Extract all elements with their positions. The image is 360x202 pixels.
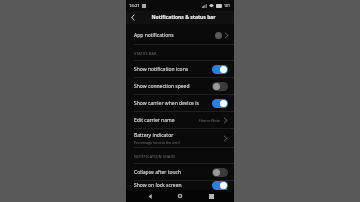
staticText: Show notification icons xyxy=(134,66,189,73)
staticText: App notifications xyxy=(134,32,215,39)
button[interactable]: Back xyxy=(143,190,157,202)
staticText: Edit carrier name xyxy=(134,117,175,124)
button[interactable]: Battery indicator xyxy=(126,129,234,147)
staticText: Show connection speed xyxy=(134,83,190,90)
button[interactable]: App notifications xyxy=(126,27,234,44)
button[interactable]: Edit carrier name xyxy=(126,112,234,128)
button[interactable] xyxy=(212,65,228,74)
button[interactable]: Recent apps xyxy=(204,190,218,202)
button[interactable] xyxy=(212,168,228,177)
staticText: Notifications & status bar xyxy=(151,14,216,21)
button[interactable]: Show notification icons xyxy=(126,61,234,77)
button[interactable]: Back xyxy=(126,11,139,24)
staticText: 16:21 xyxy=(129,3,140,9)
staticText: 101 xyxy=(224,3,231,8)
button[interactable] xyxy=(212,82,228,91)
staticText: Battery indicator xyxy=(134,132,174,139)
staticText: Collapse after touch xyxy=(134,169,182,176)
staticText: Show carrier when device is locked xyxy=(134,100,209,107)
staticText: Honor Note xyxy=(199,118,221,123)
button[interactable]: Collapse after touch xyxy=(126,164,234,180)
button[interactable]: Show connection speed xyxy=(126,78,234,94)
staticText: STATUS BAR xyxy=(134,51,157,56)
button[interactable]: Home xyxy=(173,190,187,202)
staticText: Percentage (next to the icon) xyxy=(134,140,180,145)
staticText: NOTIFICATION SHADE xyxy=(134,154,176,159)
button[interactable]: Show on lock screen xyxy=(126,181,234,190)
button[interactable] xyxy=(212,99,228,108)
button[interactable]: Show carrier when device is locked xyxy=(126,95,234,111)
button[interactable] xyxy=(212,181,228,190)
staticText: Show on lock screen xyxy=(134,182,182,189)
